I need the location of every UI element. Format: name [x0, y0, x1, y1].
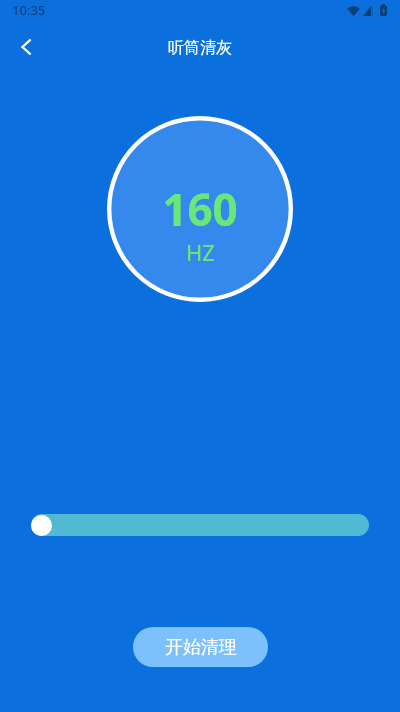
button[interactable]: Frequency slider	[31, 514, 369, 536]
staticText: 听筒清灰	[168, 38, 232, 58]
button[interactable]: 开始清理	[133, 627, 268, 667]
button[interactable]: Back	[1, 24, 49, 72]
staticText: 160	[162, 179, 238, 239]
staticText: HZ	[186, 237, 215, 267]
staticText: 10:35	[12, 1, 46, 19]
staticText: 开始清理	[165, 636, 237, 659]
